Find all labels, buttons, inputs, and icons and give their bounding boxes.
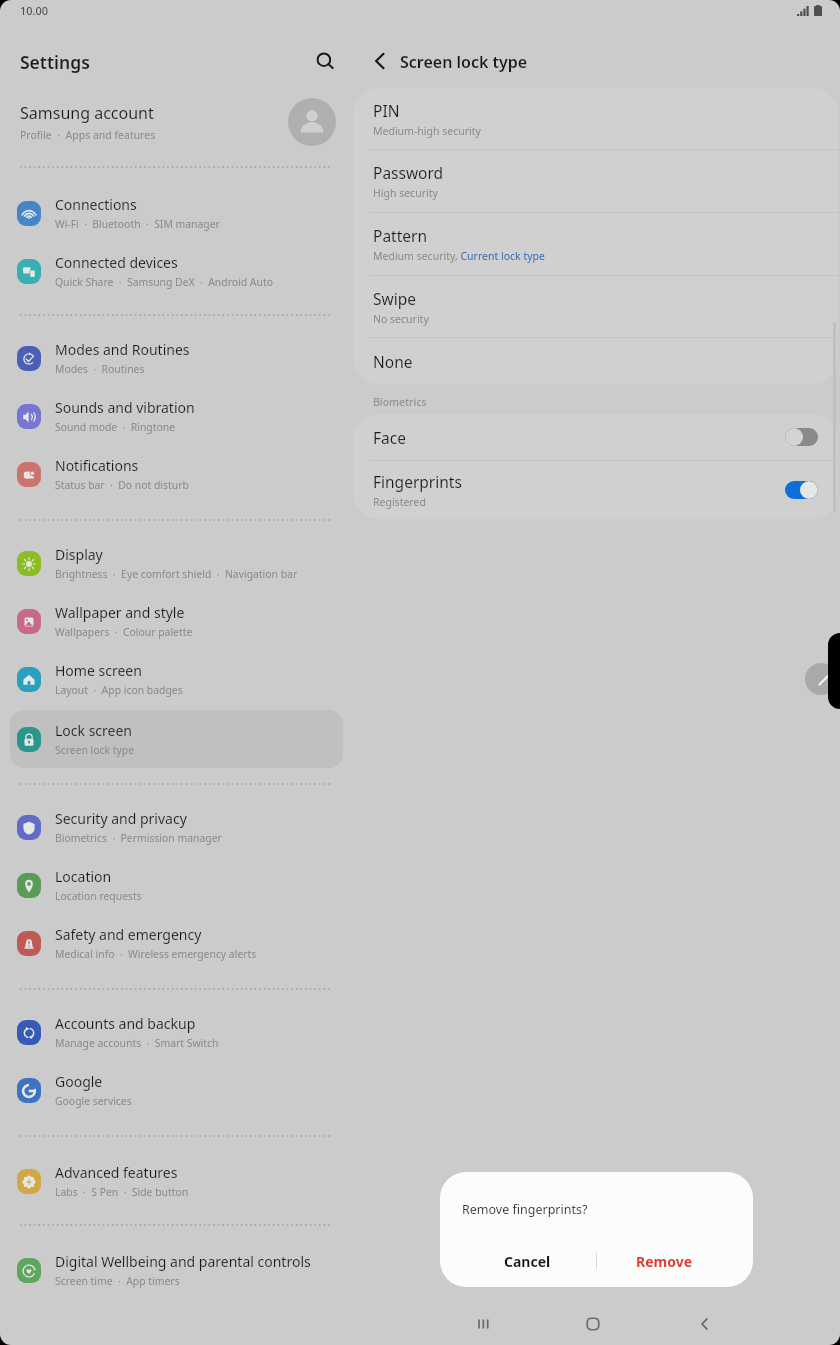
- button[interactable]: Samsung account: [0, 93, 353, 151]
- button[interactable]: Back: [360, 41, 400, 81]
- staticText: PIN: [373, 100, 400, 121]
- staticText: Digital Wellbeing and parental controls: [55, 1252, 311, 1271]
- staticText: Sound mode · Ringtone: [55, 420, 176, 434]
- staticText: High security: [373, 186, 438, 200]
- staticText: Brightness · Eye comfort shield · Naviga…: [55, 567, 298, 581]
- staticText: Screen lock type: [55, 743, 135, 757]
- button[interactable]: Security and privacy: [10, 798, 343, 856]
- staticText: Samsung account: [20, 102, 154, 124]
- staticText: Display: [55, 545, 103, 564]
- staticText: Swipe: [373, 288, 416, 309]
- staticText: Medium-high security: [373, 124, 481, 138]
- staticText: Settings: [20, 50, 90, 74]
- button[interactable]: Safety and emergency: [10, 914, 343, 972]
- staticText: Screen lock type: [400, 51, 528, 73]
- button[interactable]: Edge panel: [805, 663, 837, 695]
- staticText: 10.00: [20, 3, 49, 18]
- staticText: Safety and emergency: [55, 925, 202, 944]
- staticText: Biometrics: [373, 395, 427, 409]
- button[interactable]: Face off: [785, 428, 818, 446]
- button[interactable]: Connections: [10, 184, 343, 242]
- staticText: Profile · Apps and features: [20, 128, 156, 142]
- staticText: Cancel: [504, 1252, 551, 1271]
- staticText: Registered: [373, 495, 426, 509]
- button[interactable]: Modes and Routines: [10, 329, 343, 387]
- staticText: Biometrics · Permission manager: [55, 831, 222, 845]
- staticText: Accounts and backup: [55, 1014, 196, 1033]
- staticText: Notifications: [55, 456, 139, 475]
- staticText: Labs · S Pen · Side button: [55, 1185, 189, 1199]
- staticText: Wi-Fi · Bluetooth · SIM manager: [55, 217, 220, 231]
- staticText: Quick Share · Samsung DeX · Android Auto: [55, 275, 273, 289]
- button[interactable]: Swipe: [353, 276, 838, 337]
- button[interactable]: Home: [565, 1302, 621, 1345]
- staticText: Remove fingerprints?: [462, 1201, 588, 1218]
- staticText: Modes · Routines: [55, 362, 145, 376]
- staticText: Google: [55, 1072, 103, 1091]
- button[interactable]: Remove: [597, 1242, 732, 1280]
- button[interactable]: Connected devices: [10, 242, 343, 300]
- staticText: Google services: [55, 1094, 132, 1108]
- button[interactable]: Display: [10, 534, 343, 592]
- button[interactable]: Fingerprints on: [785, 481, 818, 499]
- button[interactable]: PIN: [353, 88, 838, 149]
- button[interactable]: Accounts and backup: [10, 1003, 343, 1061]
- button[interactable]: Back: [677, 1302, 733, 1345]
- button[interactable]: Face: [353, 414, 838, 460]
- staticText: Pattern: [373, 225, 427, 246]
- staticText: Status bar · Do not disturb: [55, 478, 189, 492]
- button[interactable]: Advanced features: [10, 1152, 343, 1210]
- staticText: Layout · App icon badges: [55, 683, 183, 697]
- button[interactable]: Search: [302, 38, 346, 82]
- staticText: Manage accounts · Smart Switch: [55, 1036, 219, 1050]
- staticText: Advanced features: [55, 1163, 178, 1182]
- staticText: No security: [373, 312, 429, 326]
- staticText: Remove: [636, 1252, 693, 1271]
- button[interactable]: Cancel: [458, 1242, 597, 1280]
- staticText: None: [373, 351, 413, 372]
- staticText: Medium security, Current lock type: [373, 249, 545, 263]
- staticText: Sounds and vibration: [55, 398, 195, 417]
- staticText: Fingerprints: [373, 471, 462, 492]
- staticText: Password: [373, 162, 444, 183]
- button[interactable]: Fingerprints: [353, 461, 838, 519]
- staticText: Connections: [55, 195, 137, 214]
- button[interactable]: Notifications: [10, 445, 343, 503]
- staticText: Home screen: [55, 661, 142, 680]
- button[interactable]: None: [353, 338, 838, 384]
- button[interactable]: Digital Wellbeing and parental controls: [10, 1241, 343, 1299]
- staticText: Screen time · App timers: [55, 1274, 180, 1288]
- staticText: Wallpaper and style: [55, 603, 185, 622]
- button[interactable]: Home screen: [10, 650, 343, 708]
- button[interactable]: Password: [353, 150, 838, 212]
- button[interactable]: Google: [10, 1061, 343, 1119]
- staticText: Location requests: [55, 889, 142, 903]
- staticText: Connected devices: [55, 253, 178, 272]
- staticText: Wallpapers · Colour palette: [55, 625, 193, 639]
- button[interactable]: Wallpaper and style: [10, 592, 343, 650]
- button[interactable]: Lock screen: [10, 710, 343, 768]
- staticText: Modes and Routines: [55, 340, 190, 359]
- staticText: Location: [55, 867, 112, 886]
- button[interactable]: Sounds and vibration: [10, 387, 343, 445]
- button[interactable]: Location: [10, 856, 343, 914]
- staticText: Medical info · Wireless emergency alerts: [55, 947, 257, 961]
- staticText: Lock screen: [55, 721, 133, 740]
- staticText: Face: [373, 427, 406, 448]
- button[interactable]: Recents: [455, 1302, 511, 1345]
- staticText: Security and privacy: [55, 809, 187, 828]
- button[interactable]: Pattern: [353, 213, 838, 275]
